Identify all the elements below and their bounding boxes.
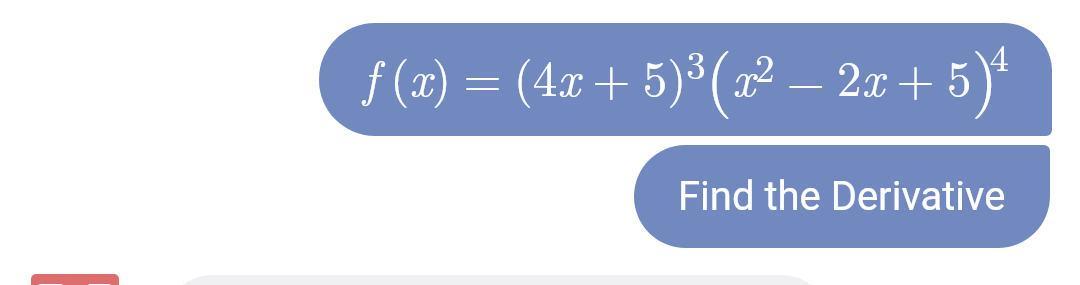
- staticText: Find the Derivative: [678, 173, 1006, 220]
- button[interactable]: Find the Derivative: [634, 145, 1050, 248]
- staticText: f (x) = (4x + 5)3(x2 − 2x + 5)4: [363, 25, 1009, 121]
- button[interactable]: f (x) = (4x + 5)3(x2 − 2x + 5)4: [319, 23, 1052, 136]
- button[interactable]: [164, 275, 830, 285]
